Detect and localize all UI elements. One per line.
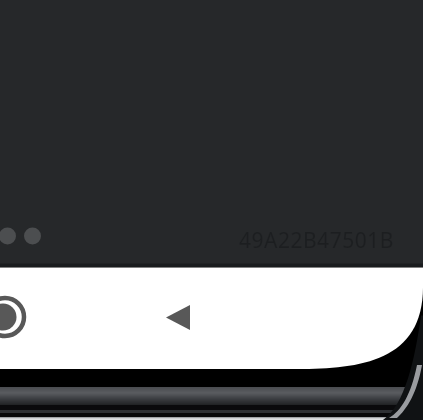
button[interactable]: Back	[149, 288, 207, 346]
staticText: 49A22B47501B	[239, 226, 394, 255]
button[interactable]: Page indicator	[0, 222, 46, 250]
button[interactable]: 49A22B47501B	[239, 226, 394, 255]
button[interactable]: Recent apps	[0, 288, 34, 346]
